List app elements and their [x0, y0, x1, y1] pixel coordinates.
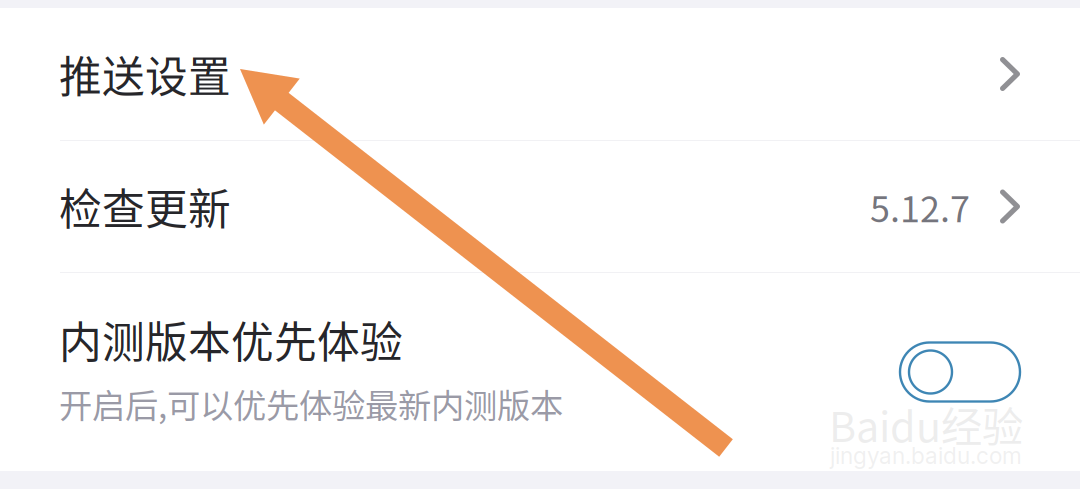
button[interactable]: 内测版本优先体验开关 [900, 342, 1020, 401]
button[interactable]: 检查更新 [0, 141, 1080, 272]
staticText: jingyan.baidu.com [830, 442, 1022, 469]
staticText: 5.12.7 [870, 180, 970, 232]
staticText: 检查更新 [59, 176, 231, 237]
button[interactable]: 内测版本优先体验 [0, 273, 1080, 471]
button[interactable]: 推送设置 [0, 8, 1080, 140]
staticText: 内测版本优先体验 [59, 308, 403, 370]
staticText: 推送设置 [59, 43, 231, 105]
staticText: Baidu经验 [829, 394, 1023, 454]
staticText: 开启后,可以优先体验最新内测版本 [59, 379, 563, 428]
